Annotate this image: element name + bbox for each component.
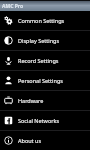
staticText: Record Settings <box>18 57 59 64</box>
staticText: Personal Settings <box>18 77 63 84</box>
staticText: Hardware <box>18 97 44 104</box>
staticText: AMC Pro <box>2 3 24 10</box>
button[interactable]: Display Settings <box>0 31 90 50</box>
button[interactable]: Hardware <box>0 91 90 110</box>
staticText: Social Networks <box>18 117 60 124</box>
button[interactable]: Record Settings <box>0 51 90 70</box>
button[interactable]: Common Settings <box>0 11 90 30</box>
button[interactable]: Social Networks <box>0 111 90 130</box>
staticText: Common Settings <box>18 17 65 24</box>
button[interactable]: Personal Settings <box>0 71 90 90</box>
staticText: Display Settings <box>18 37 60 44</box>
staticText: About us <box>18 137 42 144</box>
button[interactable]: About us <box>0 131 90 150</box>
